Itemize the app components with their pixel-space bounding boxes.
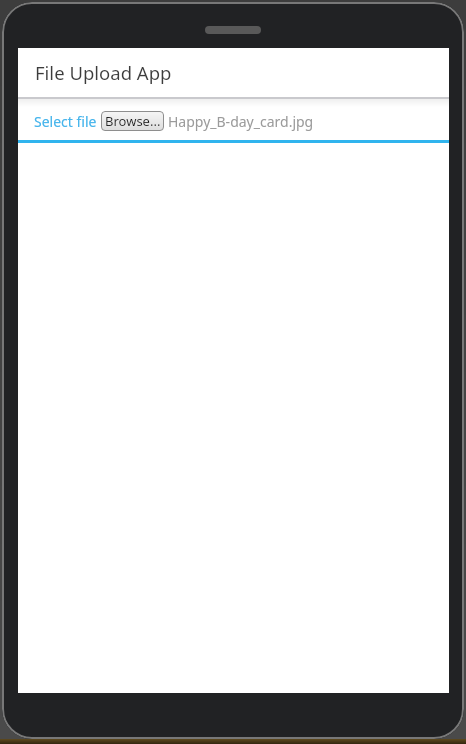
staticText: File Upload App bbox=[35, 60, 172, 85]
button[interactable]: Select file bbox=[34, 112, 97, 131]
staticText: Browse... bbox=[105, 112, 161, 130]
button[interactable]: Browse... bbox=[101, 111, 164, 131]
staticText: Happy_B-day_card.jpg bbox=[168, 112, 314, 131]
